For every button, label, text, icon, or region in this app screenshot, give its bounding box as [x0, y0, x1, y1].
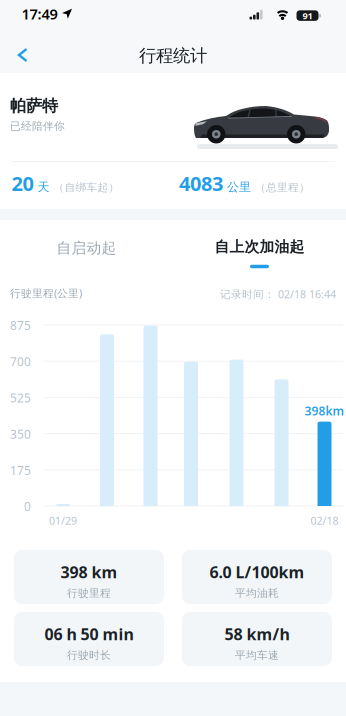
staticText: 58 km/h [224, 623, 289, 644]
staticText: 350 [10, 426, 31, 442]
button[interactable]: 自启动起 [0, 224, 173, 272]
staticText: 4083 [179, 170, 223, 197]
staticText: 398km [304, 403, 344, 419]
staticText: 398 km [60, 561, 117, 582]
staticText: 175 [10, 462, 31, 478]
staticText: 天 [37, 180, 49, 194]
staticText: 0 [24, 498, 31, 514]
staticText: 01/29 [49, 513, 77, 528]
staticText: 20 [11, 170, 33, 197]
staticText: 行程统计 [139, 45, 207, 66]
button[interactable]: 自上次加油起 [173, 229, 346, 277]
staticText: 公里 [227, 180, 251, 194]
staticText: 记录时间： 02/18 16:44 [220, 287, 336, 301]
button[interactable]: Back [6, 40, 40, 70]
staticText: 02/18 [310, 513, 338, 528]
staticText: 自上次加油起 [214, 238, 304, 256]
staticText: 已经陪伴你 [10, 120, 65, 133]
staticText: 91 [302, 9, 312, 22]
staticText: 06 h 50 min [44, 623, 133, 644]
staticText: 17:49 [21, 4, 57, 23]
staticText: 行驶时长 [67, 649, 111, 662]
staticText: 行驶里程 [67, 587, 111, 600]
staticText: 帕萨特 [10, 96, 58, 116]
staticText: 平均油耗 [235, 587, 279, 600]
staticText: （自绑车起） [53, 181, 119, 194]
staticText: 6.0 L/100km [209, 561, 304, 582]
staticText: 525 [10, 390, 31, 406]
staticText: 行驶里程(公里) [10, 286, 82, 300]
staticText: 875 [10, 317, 31, 333]
staticText: （总里程） [255, 181, 310, 194]
staticText: 自启动起 [56, 239, 116, 257]
staticText: 平均车速 [235, 649, 279, 662]
staticText: 700 [10, 354, 31, 370]
